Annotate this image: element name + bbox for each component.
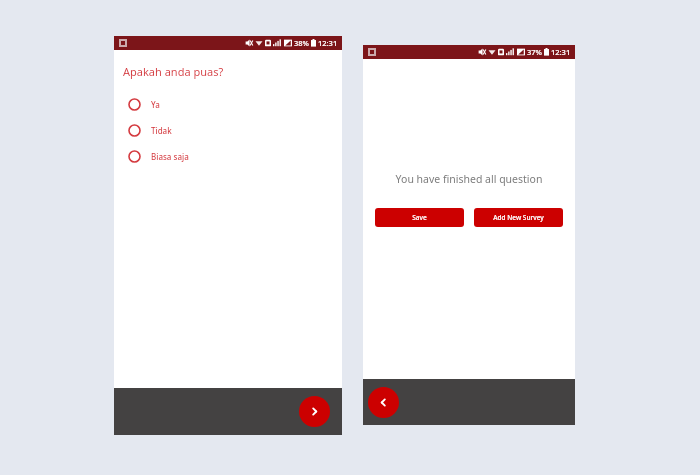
- staticText: Add New Survey: [493, 213, 544, 222]
- button[interactable]: Back: [368, 387, 399, 418]
- button[interactable]: Add New Survey: [474, 208, 563, 227]
- staticText: You have finished all question: [363, 172, 575, 186]
- staticText: Ya: [151, 99, 160, 110]
- button[interactable]: Biasa saja: [114, 143, 342, 169]
- staticText: Apakah anda puas?: [123, 64, 224, 79]
- staticText: 12:31: [318, 38, 338, 48]
- button[interactable]: Tidak: [114, 117, 342, 143]
- button[interactable]: Save: [375, 208, 464, 227]
- staticText: Biasa saja: [151, 151, 189, 162]
- staticText: Save: [412, 213, 427, 222]
- staticText: 38%: [294, 38, 309, 48]
- button[interactable]: Ya: [114, 91, 342, 117]
- staticText: 12:31: [551, 47, 571, 57]
- button[interactable]: Next question: [299, 396, 330, 427]
- staticText: Tidak: [151, 125, 172, 136]
- staticText: 37%: [527, 47, 542, 57]
